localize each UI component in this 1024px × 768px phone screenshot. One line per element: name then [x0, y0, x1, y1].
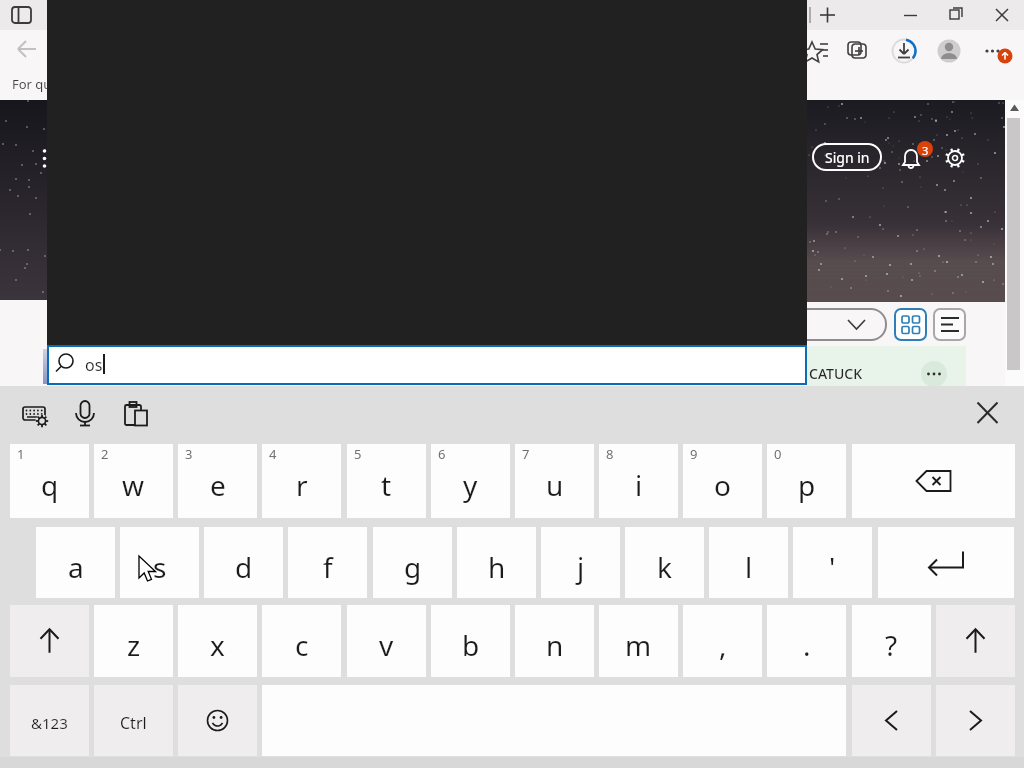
- staticText: .: [803, 626, 811, 664]
- staticText: g: [404, 548, 422, 586]
- button[interactable]: d: [204, 527, 283, 598]
- button[interactable]: [68, 398, 102, 434]
- button[interactable]: .: [767, 605, 846, 677]
- staticText: 0: [774, 445, 782, 463]
- staticText: v: [379, 626, 394, 664]
- staticText: Ctrl: [120, 712, 147, 734]
- staticText: y: [463, 466, 478, 504]
- button[interactable]: [852, 444, 1015, 518]
- button[interactable]: [890, 135, 980, 180]
- button[interactable]: [933, 308, 966, 341]
- staticText: e: [210, 466, 226, 504]
- staticText: 3: [922, 143, 929, 158]
- staticText: n: [546, 626, 564, 664]
- button[interactable]: a: [36, 527, 115, 598]
- staticText: 6: [438, 445, 446, 463]
- staticText: d: [235, 548, 253, 586]
- button[interactable]: [178, 685, 257, 756]
- button[interactable]: s: [120, 527, 199, 598]
- button[interactable]: b: [431, 605, 510, 677]
- staticText: z: [127, 626, 141, 664]
- button[interactable]: n: [515, 605, 594, 677]
- button[interactable]: ?: [852, 605, 931, 677]
- button[interactable]: [10, 605, 89, 677]
- staticText: k: [657, 548, 672, 586]
- button[interactable]: [888, 34, 920, 64]
- staticText: u: [546, 466, 564, 504]
- button[interactable]: ': [793, 527, 872, 598]
- button[interactable]: q: [10, 444, 89, 518]
- button[interactable]: h: [457, 527, 536, 598]
- button[interactable]: m: [599, 605, 678, 677]
- button[interactable]: e: [178, 444, 257, 518]
- button[interactable]: i: [599, 444, 678, 518]
- button[interactable]: [988, 2, 1016, 28]
- button[interactable]: ,: [683, 605, 762, 677]
- staticText: x: [210, 626, 225, 664]
- button[interactable]: l: [709, 527, 788, 598]
- button[interactable]: [120, 398, 156, 434]
- button[interactable]: [896, 2, 924, 28]
- button[interactable]: x: [178, 605, 257, 677]
- staticText: 7: [522, 445, 530, 463]
- button[interactable]: y: [431, 444, 510, 518]
- staticText: j: [577, 548, 585, 586]
- button[interactable]: t: [347, 444, 426, 518]
- staticText: i: [635, 466, 643, 504]
- button[interactable]: [852, 685, 931, 756]
- button[interactable]: [16, 398, 54, 434]
- staticText: CATUCK: [809, 364, 863, 383]
- button[interactable]: [10, 38, 44, 64]
- button[interactable]: [894, 308, 927, 341]
- staticText: &123: [31, 713, 68, 733]
- button[interactable]: Ctrl: [94, 685, 173, 756]
- staticText: m: [625, 626, 652, 664]
- button[interactable]: [980, 36, 1014, 66]
- staticText: 2: [101, 445, 109, 463]
- button[interactable]: os: [47, 345, 807, 385]
- button[interactable]: [842, 36, 874, 66]
- button[interactable]: c: [262, 605, 341, 677]
- button[interactable]: Sign in: [812, 143, 882, 171]
- staticText: l: [745, 548, 753, 586]
- staticText: w: [122, 466, 145, 504]
- button[interactable]: [936, 605, 1015, 677]
- button[interactable]: [8, 2, 36, 28]
- button[interactable]: [921, 361, 947, 387]
- button[interactable]: [878, 527, 1014, 598]
- button[interactable]: f: [288, 527, 367, 598]
- button[interactable]: k: [625, 527, 704, 598]
- staticText: f: [323, 548, 333, 586]
- button[interactable]: [800, 36, 834, 66]
- button[interactable]: z: [94, 605, 173, 677]
- button[interactable]: p: [767, 444, 846, 518]
- staticText: q: [41, 466, 59, 504]
- button[interactable]: w: [94, 444, 173, 518]
- button[interactable]: &123: [10, 685, 89, 756]
- staticText: ,: [719, 626, 727, 664]
- staticText: h: [488, 548, 506, 586]
- button[interactable]: [970, 396, 1006, 432]
- button[interactable]: g: [373, 527, 452, 598]
- button[interactable]: j: [541, 527, 620, 598]
- staticText: 5: [354, 445, 362, 463]
- staticText: 3: [185, 445, 193, 463]
- staticText: b: [462, 626, 480, 664]
- staticText: o: [714, 466, 731, 504]
- staticText: p: [798, 466, 816, 504]
- button[interactable]: [800, 308, 887, 341]
- staticText: t: [381, 466, 392, 504]
- staticText: s: [153, 548, 167, 586]
- button[interactable]: [942, 2, 970, 28]
- button[interactable]: r: [262, 444, 341, 518]
- staticText: a: [68, 548, 84, 586]
- button[interactable]: [936, 685, 1015, 756]
- button[interactable]: [934, 34, 964, 64]
- staticText: 9: [690, 445, 698, 463]
- button[interactable]: o: [683, 444, 762, 518]
- staticText: For qu: [12, 75, 52, 93]
- button[interactable]: v: [347, 605, 426, 677]
- button[interactable]: u: [515, 444, 594, 518]
- button[interactable]: [816, 3, 840, 27]
